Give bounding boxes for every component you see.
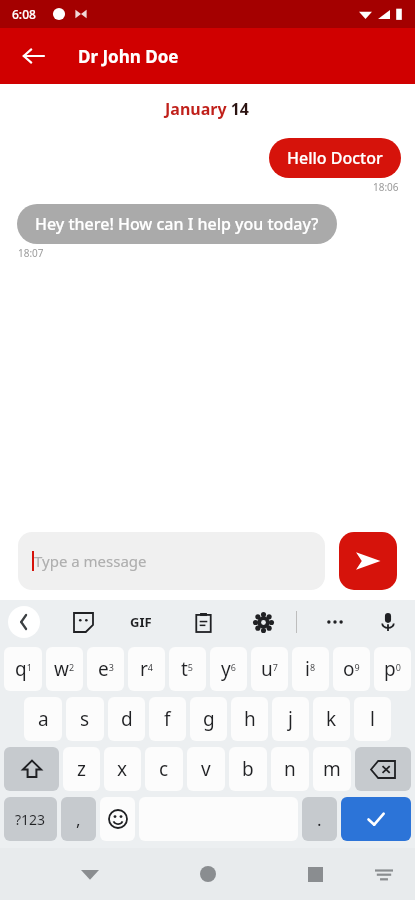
button[interactable]: e3	[87, 647, 124, 691]
staticText: a	[38, 706, 49, 732]
button[interactable]: Home	[188, 854, 228, 894]
staticText: y6	[221, 656, 236, 682]
button[interactable]: j	[272, 697, 309, 741]
button[interactable]: y6	[210, 647, 247, 691]
button[interactable]: Recents	[295, 854, 335, 894]
staticText: 18:07	[18, 246, 44, 260]
staticText: ?123	[15, 810, 46, 829]
staticText: t5	[181, 656, 194, 682]
staticText: d	[121, 706, 133, 732]
staticText: k	[326, 706, 337, 732]
staticText: c	[159, 756, 169, 782]
button[interactable]: ?123	[4, 797, 57, 841]
button[interactable]: w2	[46, 647, 83, 691]
staticText: q1	[15, 656, 32, 682]
button[interactable]: ,	[61, 797, 96, 841]
button[interactable]: Hey there! How can I help you today?	[17, 204, 337, 244]
button[interactable]: GIF	[124, 607, 158, 637]
button[interactable]: r4	[128, 647, 165, 691]
staticText: Hey there! How can I help you today?	[35, 213, 319, 235]
button[interactable]: n	[271, 747, 309, 791]
button[interactable]: Stickers	[68, 607, 98, 637]
button[interactable]: Voice input	[373, 607, 403, 637]
button[interactable]: o9	[333, 647, 370, 691]
button[interactable]: q1	[4, 647, 42, 691]
staticText: p0	[384, 656, 401, 682]
button[interactable]: Collapse	[8, 606, 40, 638]
button[interactable]: Type a message	[18, 532, 325, 590]
button[interactable]: a	[24, 697, 62, 741]
button[interactable]: Hello Doctor	[269, 138, 401, 178]
staticText: e3	[98, 656, 114, 682]
button[interactable]: Back	[10, 33, 56, 79]
staticText: h	[244, 706, 256, 732]
staticText: Hello Doctor	[287, 147, 383, 169]
button[interactable]: Shift	[4, 747, 59, 791]
button[interactable]: i8	[292, 647, 329, 691]
staticText: r4	[140, 656, 153, 682]
staticText: Dr John Doe	[78, 45, 179, 68]
staticText: x	[117, 756, 128, 782]
button[interactable]: d	[108, 697, 145, 741]
staticText: ,	[76, 808, 81, 831]
button[interactable]: z	[63, 747, 100, 791]
staticText: i8	[305, 656, 316, 682]
button[interactable]: Backspace	[355, 747, 411, 791]
button[interactable]: s	[66, 697, 104, 741]
staticText: b	[242, 756, 254, 782]
staticText: s	[80, 706, 90, 732]
button[interactable]: Enter	[341, 797, 411, 841]
button[interactable]: g	[190, 697, 227, 741]
staticText: v	[201, 756, 211, 782]
staticText: 6:08	[12, 6, 36, 22]
staticText: j	[288, 706, 293, 732]
button[interactable]: Send	[339, 532, 397, 590]
button[interactable]: t5	[169, 647, 206, 691]
staticText: January 14	[165, 98, 250, 120]
button[interactable]: f	[149, 697, 186, 741]
staticText: .	[317, 808, 322, 831]
staticText: Type a message	[34, 551, 147, 571]
staticText: o9	[343, 656, 360, 682]
staticText: w2	[54, 656, 75, 682]
button[interactable]: c	[145, 747, 183, 791]
button[interactable]: Settings	[248, 607, 278, 637]
button[interactable]: b	[229, 747, 267, 791]
button[interactable]: Clipboard	[188, 607, 218, 637]
staticText: n	[284, 756, 296, 782]
button[interactable]: More options	[320, 607, 350, 637]
staticText: g	[203, 706, 215, 732]
staticText: l	[370, 706, 375, 732]
button[interactable]: u7	[251, 647, 288, 691]
button[interactable]: .	[302, 797, 337, 841]
staticText: GIF	[130, 613, 152, 631]
button[interactable]: h	[231, 697, 268, 741]
button[interactable]: Switch keyboard	[367, 857, 401, 891]
button[interactable]: Back	[70, 854, 110, 894]
button[interactable]: m	[313, 747, 351, 791]
button[interactable]: l	[354, 697, 391, 741]
button[interactable]: Emoji	[100, 797, 135, 841]
staticText: m	[323, 756, 341, 782]
button[interactable]: p0	[374, 647, 411, 691]
staticText: 18:06	[373, 180, 399, 194]
button[interactable]: x	[104, 747, 141, 791]
staticText: u7	[261, 656, 278, 682]
staticText: f	[164, 706, 171, 732]
button[interactable]: v	[187, 747, 225, 791]
staticText: z	[77, 756, 86, 782]
button[interactable]: k	[313, 697, 350, 741]
